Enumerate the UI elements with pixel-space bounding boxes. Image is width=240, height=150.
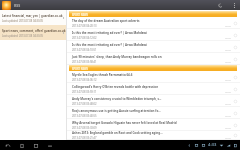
- staticText: Collingwood's Harry O'Brien reveals batt…: [72, 85, 159, 89]
- staticText: 2013-07-08 04:12:02: [72, 36, 97, 40]
- staticText: Read: [225, 102, 231, 105]
- staticText: Read: [225, 90, 231, 93]
- button[interactable]: Recent apps: [31, 141, 40, 150]
- button[interactable]: Is this the most irritating ad ever? | A…: [67, 41, 240, 53]
- staticText: SPORT NEWS: [72, 13, 88, 16]
- staticText: 2013-07-08 03:48:02: [72, 102, 97, 106]
- button[interactable]: Back: [3, 141, 12, 150]
- button[interactable]: Home: [17, 141, 26, 150]
- staticText: Last updated: 2013-07-08 04:33:35: [2, 34, 44, 37]
- staticText: Read: [225, 78, 231, 81]
- staticText: Read: [225, 136, 231, 139]
- staticText: Ashes 2013: England gamble on Root and C…: [72, 131, 163, 135]
- staticText: Sport news, comment, offer/ guardian.co.…: [2, 29, 66, 33]
- staticText: 2013-07-08 03:59:11: [72, 90, 97, 94]
- staticText: Just 90 minutes' sleep, than Andy Murray…: [72, 55, 162, 59]
- staticText: Why Arsenal target Gonzalo Higuain has n…: [72, 121, 177, 125]
- staticText: RSS: [14, 3, 21, 8]
- button[interactable]: The day of the dream Australian sport ad…: [67, 17, 240, 29]
- staticText: The day of the dream Australian sport ad…: [72, 19, 140, 23]
- button[interactable]: Just 90 minutes' sleep, than Andy Murray…: [67, 53, 240, 65]
- staticText: 4:33: [208, 142, 217, 148]
- staticText: 2013-07-08 03:21:47: [72, 136, 97, 140]
- staticText: Roq's anonymous use is getting Aussie su…: [72, 109, 161, 113]
- staticText: 2013-07-08 03:33:09: [72, 126, 97, 130]
- staticText: 2013-07-08 03:58:41: [72, 60, 97, 64]
- button[interactable]: App icon: [2, 1, 11, 10]
- staticText: Latest financial, mar, yen | guardian.co…: [2, 14, 63, 18]
- staticText: 2013-07-08 03:40:55: [72, 114, 97, 118]
- staticText: Read: [225, 60, 231, 63]
- staticText: Read: [225, 36, 231, 39]
- staticText: Read: [225, 24, 231, 27]
- button[interactable]: Myrtle Sea Eagles thrash Parramatta 64-6: [67, 71, 240, 83]
- staticText: Read: [225, 48, 231, 51]
- staticText: 2013-07-08 04:06:12: [72, 78, 97, 82]
- staticText: Last updated: 2013-07-08 04:33:35: [2, 19, 44, 22]
- button[interactable]: Latest financial, mar, yen | guardian.co…: [0, 10, 66, 25]
- staticText: SPORT NEWS: [72, 67, 88, 70]
- button[interactable]: Ashes 2013: England gamble on Root and C…: [67, 131, 240, 140]
- staticText: Myrtle Sea Eagles thrash Parramatta 64-6: [72, 73, 133, 77]
- staticText: Is this the most irritating ad ever? | A…: [72, 43, 147, 47]
- staticText: Is this the most irritating ad ever? | A…: [72, 31, 147, 35]
- staticText: Andy Murray's consistency crucial to Wim…: [72, 97, 162, 101]
- button[interactable]: More options: [229, 0, 239, 10]
- button[interactable]: Andy Murray's consistency crucial to Wim…: [67, 95, 240, 107]
- button[interactable]: Is this the most irritating ad ever? | A…: [67, 29, 240, 41]
- staticText: 2013-07-08 04:20:13: [72, 24, 97, 28]
- button[interactable]: Refresh: [215, 0, 225, 10]
- button[interactable]: Collingwood's Harry O'Brien reveals batt…: [67, 83, 240, 95]
- staticText: Read: [225, 114, 231, 117]
- button[interactable]: Roq's anonymous use is getting Aussie su…: [67, 107, 240, 119]
- button[interactable]: Sport news, comment, offer/ guardian.co.…: [0, 25, 66, 40]
- button[interactable]: Why Arsenal target Gonzalo Higuain has n…: [67, 119, 240, 131]
- staticText: Read: [225, 126, 231, 129]
- button[interactable]: Screenshot: [45, 141, 54, 150]
- button[interactable]: SPORT NEWS: [69, 11, 237, 17]
- staticText: 2013-07-08 04:10:51: [72, 48, 97, 52]
- button[interactable]: SPORT NEWS: [69, 65, 237, 71]
